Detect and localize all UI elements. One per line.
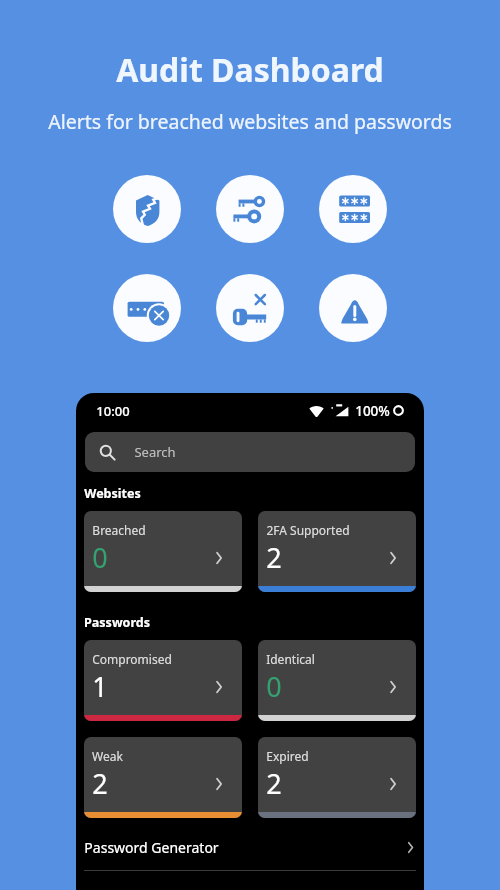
button[interactable]: Breached [84,511,242,592]
button[interactable]: Compromised password [113,274,181,342]
button[interactable]: Password Generator [84,829,416,865]
staticText: 100% [355,402,390,420]
button[interactable]: Breached websites [113,175,181,243]
button[interactable]: Passwords [319,175,387,243]
button[interactable]: Identical [258,640,416,721]
button[interactable]: Security alerts [319,274,387,342]
staticText: Search [134,443,176,461]
staticText: Weak [92,748,123,764]
button[interactable]: 2FA Supported [258,511,416,592]
staticText: 2 [92,765,108,802]
staticText: 0 [92,539,108,576]
staticText: Compromised [92,651,172,667]
button[interactable]: Compromised [84,640,242,721]
staticText: Audit Dashboard [116,48,384,92]
staticText: Expired [266,748,309,764]
staticText: 2 [266,539,282,576]
staticText: Passwords [84,614,150,631]
staticText: 10:00 [96,402,130,420]
staticText: 2 [266,765,282,802]
staticText: Password Generator [84,838,219,857]
staticText: Breached [92,522,146,538]
staticText: Websites [84,485,141,502]
button[interactable]: Expired [258,737,416,818]
staticText: Alerts for breached websites and passwor… [48,108,452,135]
staticText: 2FA Supported [266,522,350,538]
staticText: 0 [266,668,282,705]
button[interactable]: Expired key [216,274,284,342]
button[interactable]: Search [85,432,415,472]
button[interactable]: Two factor authentication [216,175,284,243]
button[interactable]: Weak [84,737,242,818]
staticText: 1 [92,668,108,705]
staticText: Identical [266,651,315,667]
